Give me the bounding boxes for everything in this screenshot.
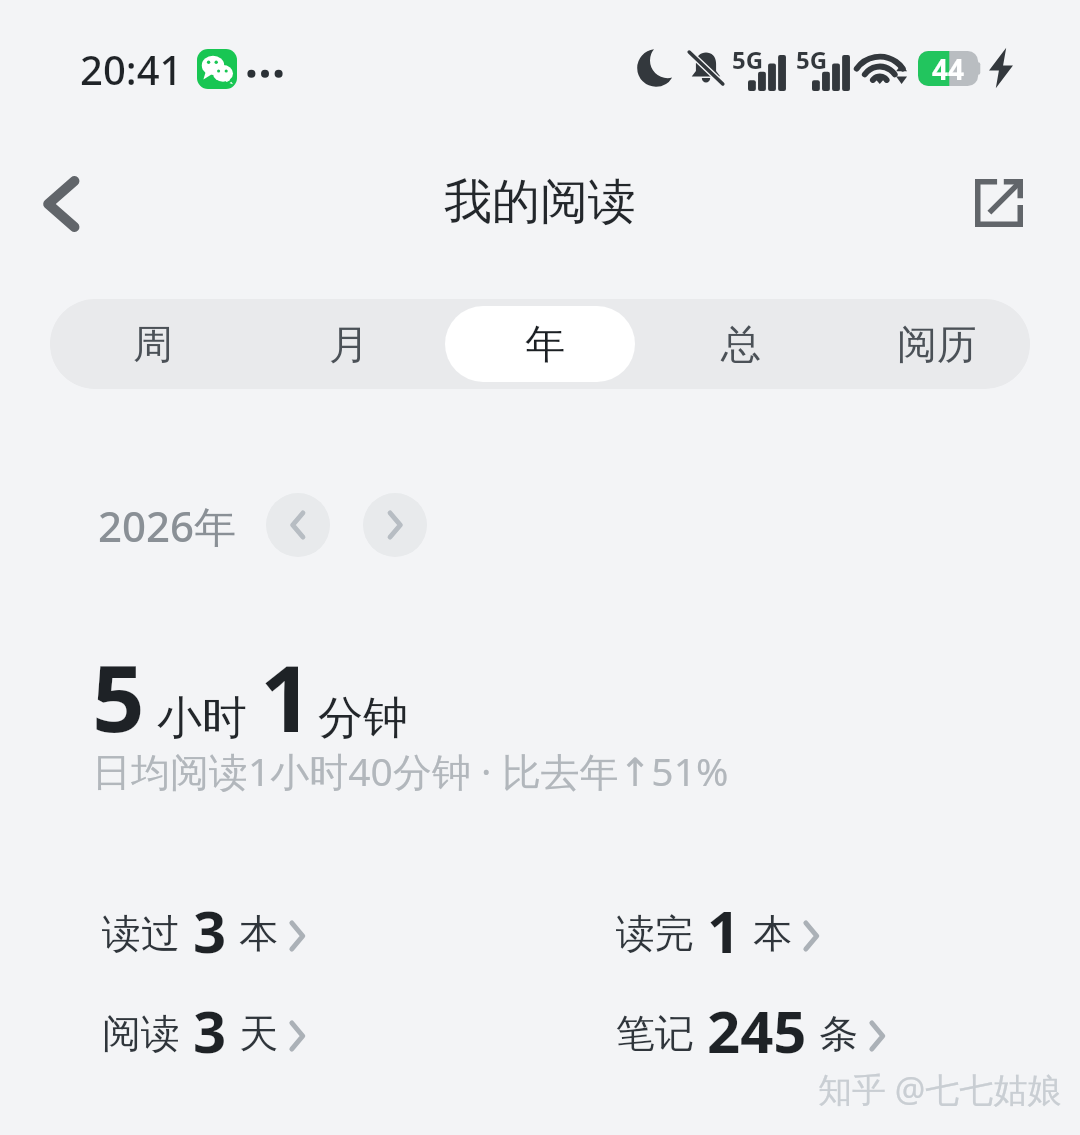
staticText: 1	[707, 891, 741, 970]
staticText: 读过	[102, 909, 180, 958]
staticText: 年	[525, 319, 565, 369]
staticText: 本	[753, 909, 792, 958]
button[interactable]: 月	[246, 299, 442, 389]
staticText: 笔记	[616, 1009, 694, 1058]
staticText: 阅历	[897, 319, 977, 369]
staticText: 条	[819, 1009, 858, 1058]
staticText: 3	[193, 891, 227, 970]
staticText: 天	[239, 1009, 278, 1058]
button[interactable]: 年	[442, 299, 638, 389]
button[interactable]: Previous year	[266, 493, 330, 557]
staticText: 阅读	[102, 1009, 180, 1058]
staticText: 总	[721, 319, 761, 369]
button[interactable]: 周	[50, 299, 246, 389]
staticText: 小时	[157, 690, 247, 747]
button[interactable]: Share	[951, 155, 1047, 251]
staticText: 5G	[796, 43, 828, 76]
staticText: 3	[193, 991, 227, 1070]
staticText: 月	[329, 319, 369, 369]
staticText: 我的阅读	[444, 172, 636, 232]
staticText: 日均阅读1小时40分钟 · 比去年↑51%	[92, 744, 729, 797]
staticText: 周	[133, 319, 173, 369]
staticText: 1	[260, 634, 313, 759]
button[interactable]: 读过	[102, 891, 305, 970]
staticText: 知乎 @七七姑娘	[818, 1066, 1062, 1112]
button[interactable]: 阅读	[102, 991, 305, 1070]
staticText: 245	[707, 991, 807, 1070]
staticText: 5G	[732, 43, 764, 76]
staticText: 5	[92, 634, 145, 759]
button[interactable]: Next year	[363, 493, 427, 557]
staticText: 本	[239, 909, 278, 958]
button[interactable]: 笔记	[616, 991, 885, 1070]
button[interactable]: 读完	[616, 891, 819, 970]
button[interactable]: 阅历	[834, 299, 1030, 389]
staticText: 2026年	[98, 497, 237, 554]
button[interactable]: 总	[638, 299, 834, 389]
staticText: 分钟	[318, 690, 408, 747]
staticText: 20:41	[80, 42, 183, 96]
button[interactable]: Back	[13, 156, 109, 252]
staticText: 读完	[616, 909, 694, 958]
staticText: 44	[932, 50, 965, 85]
